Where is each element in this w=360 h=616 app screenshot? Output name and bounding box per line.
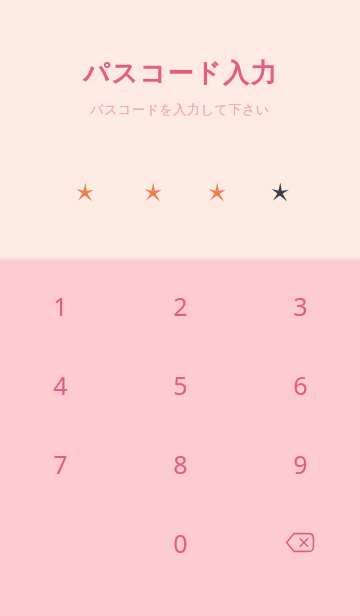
staticText: 1: [53, 289, 68, 323]
button[interactable]: 1: [0, 266, 120, 345]
button[interactable]: 4: [0, 345, 120, 424]
staticText: 6: [293, 368, 308, 402]
staticText: 5: [173, 368, 188, 402]
button[interactable]: 3: [240, 266, 360, 345]
staticText: 8: [173, 447, 188, 481]
button[interactable]: 8: [120, 424, 240, 503]
staticText: パスコード入力: [83, 57, 278, 90]
button[interactable]: 5: [120, 345, 240, 424]
button[interactable]: Backspace: [240, 503, 360, 582]
staticText: 4: [53, 368, 68, 402]
button[interactable]: 9: [240, 424, 360, 503]
staticText: 9: [293, 447, 308, 481]
staticText: 7: [53, 447, 68, 481]
staticText: 0: [173, 526, 188, 560]
button[interactable]: 7: [0, 424, 120, 503]
staticText: 2: [173, 289, 188, 323]
button[interactable]: 0: [120, 503, 240, 582]
staticText: パスコードを入力して下さい: [90, 101, 270, 117]
staticText: 3: [293, 289, 308, 323]
button[interactable]: 6: [240, 345, 360, 424]
button[interactable]: 2: [120, 266, 240, 345]
